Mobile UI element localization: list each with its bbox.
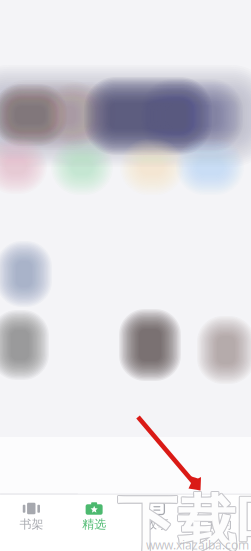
button[interactable]: 书架 <box>0 495 63 533</box>
staticText: 下载吧 <box>116 487 251 551</box>
staticText: 精选 <box>82 517 106 532</box>
staticText: 下载吧 <box>117 488 251 551</box>
button[interactable]: 我的 <box>188 495 251 533</box>
staticText: 下载吧 <box>118 488 251 551</box>
staticText: 下载吧 <box>117 486 251 551</box>
staticText: 下载吧 <box>118 487 251 551</box>
staticText: 下载吧 <box>117 487 251 551</box>
button[interactable]: 精选 <box>63 495 126 533</box>
staticText: www.xiazaiba.com <box>146 537 249 551</box>
staticText: 我的 <box>208 517 232 532</box>
staticText: 下载吧 <box>118 486 251 551</box>
staticText: 下载吧 <box>116 486 251 551</box>
button[interactable]: 故事 <box>125 495 188 533</box>
staticText: 下载吧 <box>116 488 251 551</box>
staticText: 故事 <box>145 517 169 532</box>
staticText: 书架 <box>19 517 43 532</box>
